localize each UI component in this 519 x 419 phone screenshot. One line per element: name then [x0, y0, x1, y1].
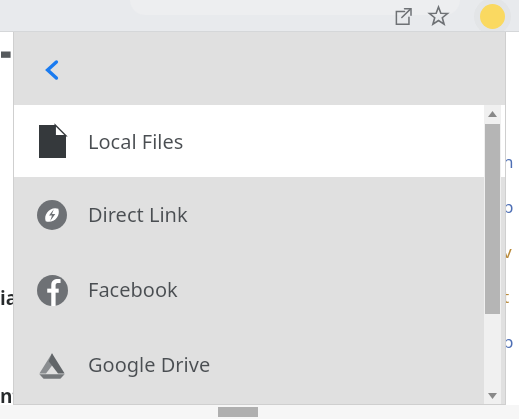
staticText: t: [503, 285, 510, 308]
button[interactable]: Profile: [474, 0, 511, 35]
staticText: Facebook: [88, 276, 178, 303]
staticText: Local Files: [88, 128, 184, 155]
button[interactable]: Bookmark: [425, 3, 451, 29]
staticText: Direct Link: [88, 201, 188, 228]
button[interactable]: Share: [389, 3, 415, 29]
button[interactable]: Back: [32, 50, 72, 90]
staticText: p: [503, 195, 514, 218]
staticText: Google Drive: [88, 351, 211, 378]
staticText: v: [503, 240, 512, 263]
staticText: n: [503, 150, 514, 173]
staticText: p: [503, 330, 514, 353]
staticText: ia: [0, 285, 18, 311]
button[interactable]: Local Files: [14, 105, 505, 177]
button[interactable]: Direct Link: [14, 177, 505, 252]
staticText: nf: [0, 383, 20, 409]
button[interactable]: Facebook: [14, 252, 505, 327]
button[interactable]: Google Drive: [14, 327, 505, 402]
